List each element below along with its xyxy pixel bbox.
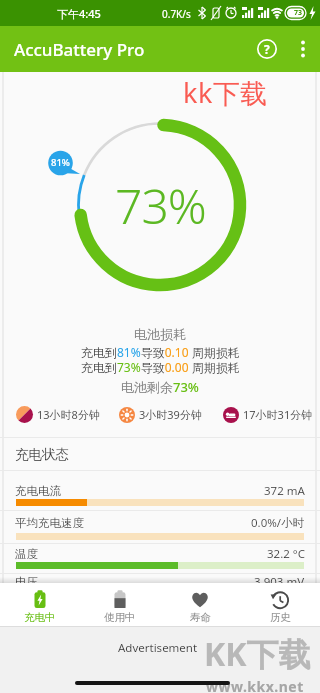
button[interactable]: 寿命 — [160, 583, 240, 626]
button[interactable] — [290, 35, 316, 63]
button[interactable]: 充电电流 — [15, 483, 305, 499]
button[interactable]: ? — [253, 35, 281, 63]
staticText: 使用中 — [104, 611, 136, 624]
staticText: AccuBattery Pro — [14, 38, 145, 61]
staticText: 充电中 — [24, 611, 56, 624]
staticText: 寿命 — [190, 611, 211, 624]
button[interactable]: 充电中 — [0, 583, 80, 626]
staticText: 充电状态 — [15, 446, 69, 463]
staticText: 73 — [294, 8, 303, 18]
button[interactable]: 温度 — [15, 546, 305, 562]
staticText: www.kkx.net — [206, 677, 304, 693]
staticText: 充电电流 — [15, 484, 61, 498]
staticText: 0.7K/s — [162, 7, 191, 21]
button[interactable]: 历史 — [240, 583, 320, 626]
button[interactable]: 平均充电速度 — [15, 515, 305, 531]
staticText: kk下载 — [183, 74, 268, 111]
staticText: 73% — [115, 173, 206, 229]
staticText: 13小时8分钟 — [37, 407, 100, 422]
staticText: 温度 — [15, 547, 38, 561]
staticText: KK下载 — [204, 632, 311, 676]
staticText: 下午4:45 — [57, 6, 101, 21]
staticText: Advertisement — [118, 640, 198, 656]
staticText: 充电到81%导致0.10 周期损耗 — [81, 344, 240, 360]
staticText: 电池损耗 — [134, 326, 186, 342]
staticText: 3小时39分钟 — [139, 407, 202, 422]
staticText: 3.903 mV — [254, 574, 305, 590]
staticText: 81% — [51, 156, 70, 169]
staticText: 0.0%/小时 — [251, 515, 305, 531]
button[interactable]: 使用中 — [80, 583, 160, 626]
staticText: 17小时31分钟 — [243, 407, 313, 422]
staticText: ? — [264, 41, 270, 57]
staticText: 历史 — [270, 611, 291, 624]
staticText: 32.2 °C — [267, 546, 305, 562]
staticText: 电池剩余73% — [121, 378, 199, 396]
staticText: 电压 — [15, 575, 38, 589]
staticText: 充电到73%导致0.00 周期损耗 — [81, 359, 240, 375]
staticText: 372 mA — [264, 483, 305, 499]
staticText: 平均充电速度 — [15, 516, 84, 530]
